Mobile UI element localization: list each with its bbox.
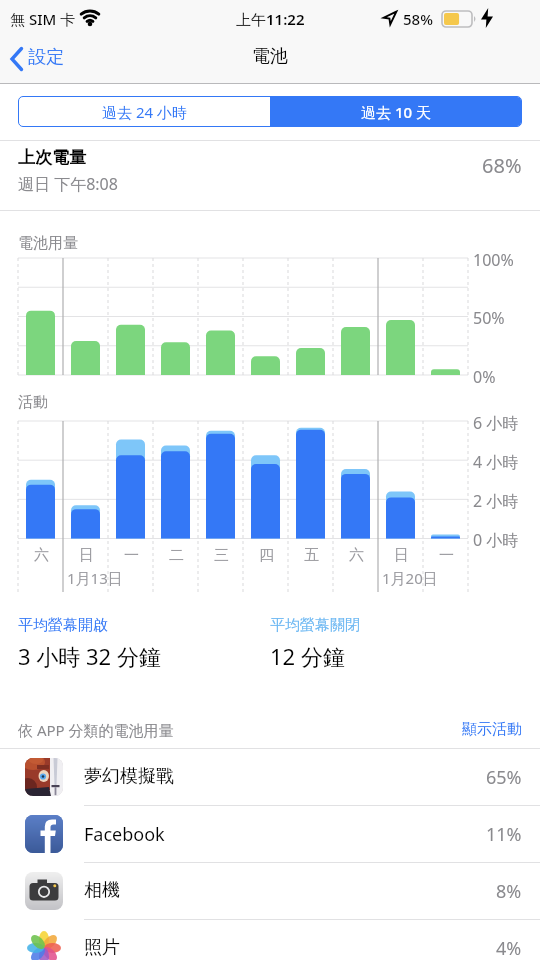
staticText: 4% bbox=[496, 936, 522, 960]
staticText: 過去 10 天 bbox=[361, 102, 431, 122]
staticText: 照片 bbox=[84, 936, 120, 959]
staticText: 100% bbox=[473, 249, 514, 271]
staticText: 四 bbox=[259, 546, 274, 565]
staticText: 六 bbox=[34, 546, 49, 565]
button[interactable]: 照片 bbox=[0, 920, 540, 960]
staticText: 一 bbox=[439, 546, 454, 565]
staticText: 設定 bbox=[28, 46, 64, 69]
staticText: 11% bbox=[486, 822, 522, 847]
staticText: 顯示活動 bbox=[462, 720, 522, 739]
staticText: 五 bbox=[304, 546, 319, 565]
staticText: 依 APP 分類的電池用量 bbox=[18, 720, 174, 740]
staticText: 六 bbox=[349, 546, 364, 565]
button[interactable]: 設定 bbox=[8, 42, 108, 78]
staticText: 平均螢幕關閉 bbox=[270, 616, 360, 635]
staticText: 上次電量 bbox=[18, 147, 86, 168]
staticText: 相機 bbox=[84, 879, 120, 902]
button[interactable]: Facebook bbox=[0, 806, 540, 863]
staticText: 電池用量 bbox=[18, 234, 78, 253]
staticText: 一 bbox=[124, 546, 139, 565]
staticText: 4 小時 bbox=[473, 451, 519, 473]
button[interactable]: 過去 24 小時 bbox=[19, 97, 270, 126]
staticText: 1月20日 bbox=[382, 568, 438, 588]
staticText: 0% bbox=[473, 366, 496, 388]
staticText: 日 bbox=[79, 546, 94, 565]
button[interactable]: 顯示活動 bbox=[462, 714, 522, 739]
staticText: 夢幻模擬戰 bbox=[84, 765, 174, 788]
staticText: 68% bbox=[482, 152, 522, 179]
staticText: 1月13日 bbox=[67, 568, 123, 588]
staticText: 三 bbox=[214, 546, 229, 565]
staticText: 電池 bbox=[252, 45, 288, 68]
staticText: 二 bbox=[169, 546, 184, 565]
staticText: Facebook bbox=[84, 822, 165, 847]
staticText: 8% bbox=[496, 879, 522, 904]
button[interactable]: 夢幻模擬戰 bbox=[0, 749, 540, 806]
staticText: 上午11:22 bbox=[236, 9, 305, 29]
staticText: 50% bbox=[473, 307, 505, 329]
staticText: 0 小時 bbox=[473, 529, 519, 551]
staticText: 6 小時 bbox=[473, 412, 519, 434]
staticText: 12 分鐘 bbox=[270, 641, 345, 671]
staticText: 65% bbox=[486, 765, 522, 790]
staticText: 過去 24 小時 bbox=[102, 102, 187, 122]
staticText: 2 小時 bbox=[473, 490, 519, 512]
button[interactable]: 相機 bbox=[0, 863, 540, 920]
staticText: 週日 下午8:08 bbox=[18, 173, 118, 195]
button[interactable]: 過去 10 天 bbox=[270, 97, 521, 126]
staticText: 日 bbox=[394, 546, 409, 565]
staticText: 無 SIM 卡 bbox=[10, 9, 76, 29]
staticText: 58% bbox=[403, 9, 433, 29]
staticText: 3 小時 32 分鐘 bbox=[18, 641, 161, 671]
staticText: 活動 bbox=[18, 393, 48, 412]
staticText: 平均螢幕開啟 bbox=[18, 616, 108, 635]
